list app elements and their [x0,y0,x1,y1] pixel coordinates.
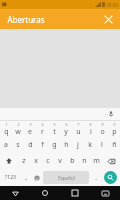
staticText: z [22,156,26,166]
staticText: h [64,140,69,150]
staticText: 6 [65,122,68,127]
button[interactable]: Hide keyboard [90,186,120,200]
button[interactable]: 2 [12,121,24,137]
button[interactable]: 5 [48,121,60,137]
staticText: n [82,156,87,166]
staticText: y [64,127,68,137]
button[interactable]: 7 [72,121,84,137]
staticText: 8 [89,122,92,127]
staticText: Español [58,175,75,181]
button[interactable]: Home [30,186,60,200]
button[interactable]: a [0,137,12,153]
staticText: ?123 [5,174,16,181]
button[interactable]: n [78,153,90,169]
staticText: g [52,140,57,150]
staticText: 2 [17,122,20,127]
staticText: f [41,140,44,150]
button[interactable]: v [54,153,66,169]
button[interactable]: Back [0,186,30,200]
button[interactable]: Search [101,171,119,184]
staticText: 09:38 [106,2,118,8]
staticText: w [15,127,21,137]
button[interactable]: 0 [108,121,120,137]
staticText: , [25,174,27,182]
button[interactable]: ?123 [1,171,20,184]
button[interactable]: j [72,137,84,153]
button[interactable]: d [24,137,36,153]
staticText: o [100,127,105,137]
button[interactable]: b [66,153,78,169]
button[interactable]: z [18,153,30,169]
staticText: v [58,156,62,166]
button[interactable]: s [12,137,24,153]
staticText: 0 [113,122,116,127]
staticText: . [95,174,97,182]
button[interactable]: 6 [60,121,72,137]
button[interactable]: Backspace [102,153,120,169]
staticText: e [28,127,32,137]
button[interactable]: Voice input [106,109,116,119]
button[interactable]: 9 [96,121,108,137]
button[interactable]: l [96,137,108,153]
staticText: b [70,156,75,166]
button[interactable]: m [90,153,102,169]
button[interactable]: Recents [60,186,90,200]
staticText: 7 [77,122,80,127]
button[interactable]: Emoji [31,171,42,184]
staticText: x [34,156,38,166]
staticText: 5 [53,122,56,127]
staticText: 4 [41,122,44,127]
staticText: m [93,156,100,166]
button[interactable]: Shift [0,153,18,169]
button[interactable]: Comma [20,171,31,184]
staticText: j [77,140,79,150]
staticText: 9 [101,122,104,127]
staticText: 1 [5,122,8,127]
button[interactable]: f [36,137,48,153]
staticText: d [28,140,33,150]
staticText: t [53,127,56,137]
button[interactable]: x [30,153,42,169]
staticText: p [112,127,117,137]
staticText: Aberturas [7,14,45,25]
staticText: r [41,127,44,137]
button[interactable]: Close [100,11,116,27]
staticText: c [46,156,50,166]
button[interactable]: 4 [36,121,48,137]
staticText: i [90,127,92,137]
button[interactable]: h [60,137,72,153]
staticText: u [76,127,81,137]
button[interactable]: 3 [24,121,36,137]
button[interactable]: k [84,137,96,153]
staticText: 3 [29,122,32,127]
button[interactable]: Period [90,171,101,184]
button[interactable]: c [42,153,54,169]
staticText: a [4,140,8,150]
staticText: l [101,140,103,150]
button[interactable]: 1 [0,121,12,137]
staticText: k [88,140,92,150]
staticText: ñ [112,140,117,150]
button[interactable]: 8 [84,121,96,137]
button[interactable]: ñ [108,137,120,153]
button[interactable]: Español [43,171,89,184]
staticText: q [4,127,9,137]
button[interactable]: g [48,137,60,153]
staticText: s [16,140,20,150]
